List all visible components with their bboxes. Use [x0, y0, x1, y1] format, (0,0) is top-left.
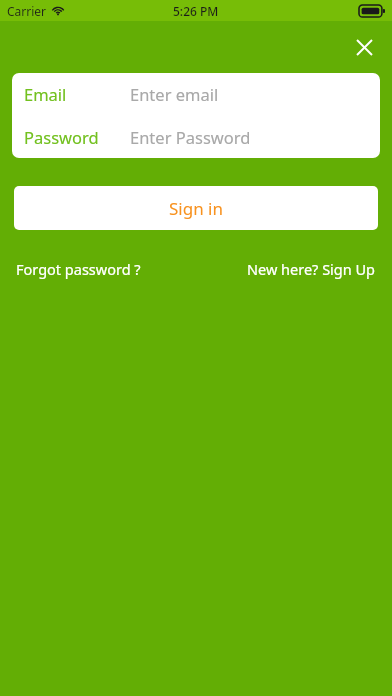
button[interactable]: New here? Sign Up [245, 256, 378, 282]
button[interactable]: Sign in [14, 186, 378, 230]
staticText: Email [24, 83, 67, 105]
staticText: Carrier [7, 3, 47, 19]
button[interactable]: Close [346, 29, 382, 65]
staticText: Password [24, 126, 99, 148]
staticText: Enter email [130, 83, 219, 105]
staticText: Forgot password ? [16, 259, 141, 279]
button[interactable]: Email [12, 73, 380, 115]
staticText: 5:26 PM [173, 3, 219, 19]
staticText: Sign in [169, 197, 223, 220]
button[interactable]: Forgot password ? [14, 256, 143, 282]
button[interactable]: Password [12, 115, 380, 158]
staticText: New here? Sign Up [247, 259, 376, 279]
staticText: Enter Password [130, 126, 251, 148]
